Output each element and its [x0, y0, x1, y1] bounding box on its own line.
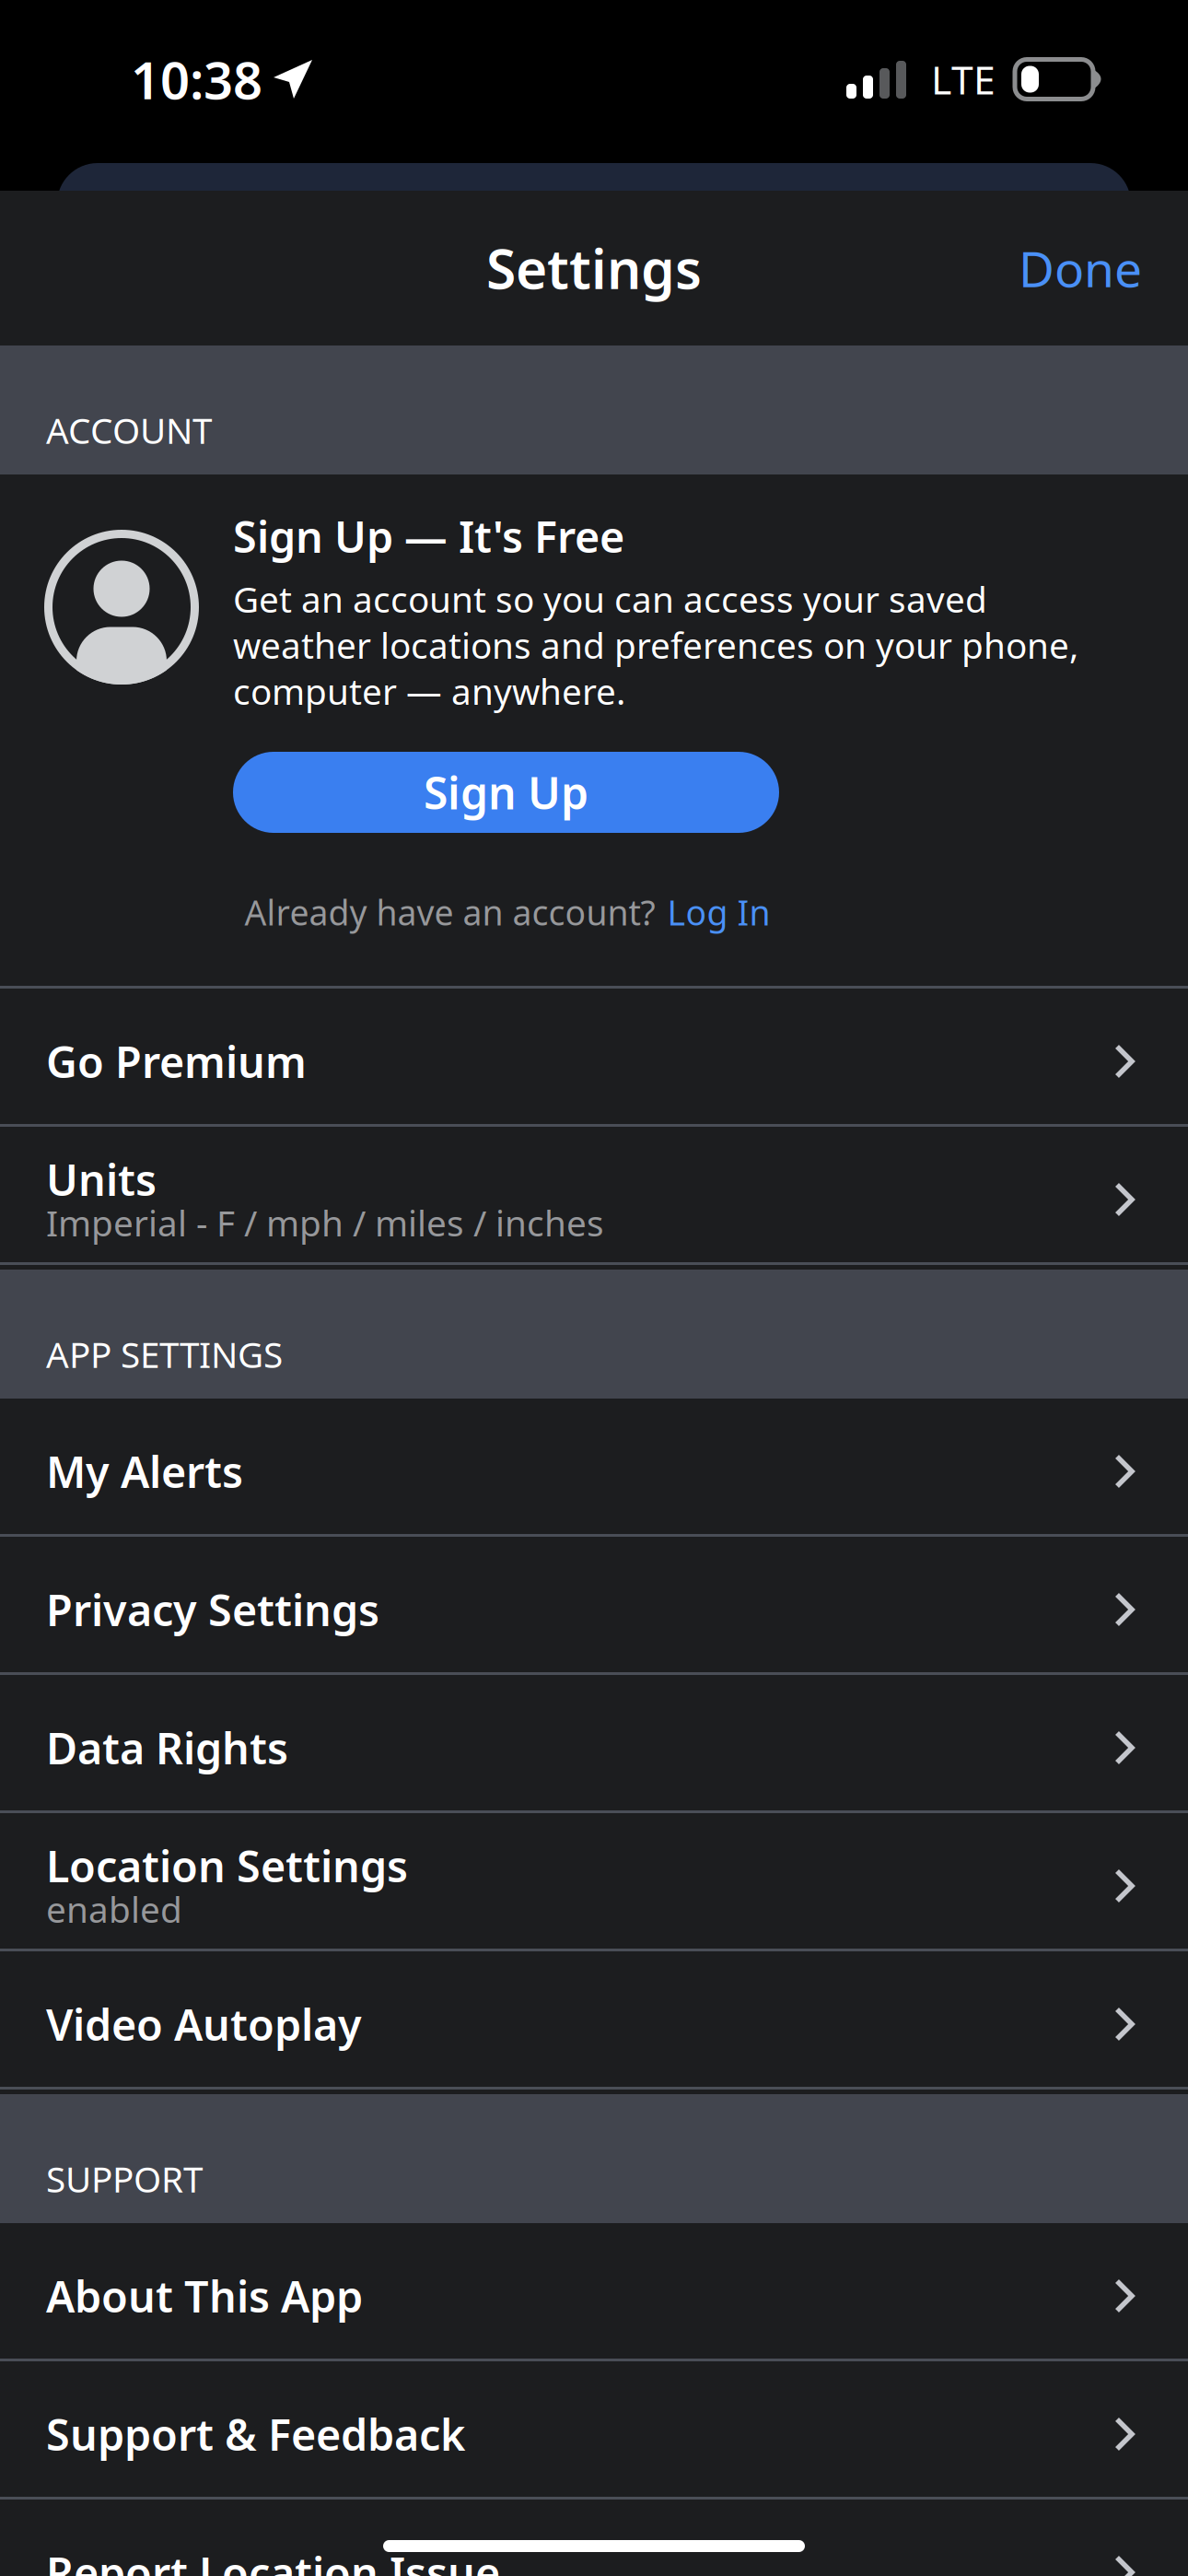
staticText: ACCOUNT — [46, 406, 212, 454]
button[interactable]: Privacy Settings — [0, 1537, 1188, 1672]
staticText: About This App — [46, 2267, 363, 2324]
button[interactable]: Sign Up — [233, 752, 779, 833]
staticText: Settings — [486, 232, 702, 304]
button[interactable]: Already have an account? — [233, 884, 779, 941]
staticText: Video Autoplay — [46, 1996, 362, 2053]
button[interactable]: Done — [982, 213, 1188, 323]
button[interactable]: Report Location Issue — [0, 2500, 1188, 2576]
staticText: Already have an account? — [245, 889, 655, 935]
staticText: Privacy Settings — [46, 1581, 379, 1638]
staticText: 10:38 — [131, 45, 262, 114]
staticText: LTE — [931, 53, 996, 105]
button[interactable]: Location Settings — [0, 1813, 1188, 1949]
staticText: Done — [1019, 235, 1142, 301]
staticText: Sign Up — It's Free — [233, 508, 624, 565]
button[interactable]: About This App — [0, 2223, 1188, 2359]
button[interactable]: Go Premium — [0, 989, 1188, 1124]
staticText: Log In — [667, 889, 770, 935]
staticText: Get an account so you can access your sa… — [233, 575, 987, 622]
staticText: enabled — [46, 1885, 182, 1933]
button[interactable]: Video Autoplay — [0, 1951, 1188, 2087]
staticText: SUPPORT — [46, 2155, 203, 2202]
staticText: Location Settings — [46, 1837, 408, 1894]
staticText: Data Rights — [46, 1719, 288, 1776]
staticText: APP SETTINGS — [46, 1330, 283, 1378]
staticText: Report Location Issue — [46, 2544, 500, 2576]
staticText: Sign Up — [424, 763, 588, 822]
staticText: Units — [46, 1151, 157, 1208]
staticText: My Alerts — [46, 1443, 243, 1500]
staticText: computer — anywhere. — [233, 667, 625, 715]
staticText: Support & Feedback — [46, 2406, 465, 2463]
staticText: Imperial - F / mph / miles / inches — [46, 1199, 604, 1246]
button[interactable]: Data Rights — [0, 1675, 1188, 1810]
staticText: Go Premium — [46, 1033, 307, 1090]
button[interactable]: My Alerts — [0, 1399, 1188, 1534]
button[interactable]: Units — [0, 1127, 1188, 1262]
staticText: weather locations and preferences on you… — [233, 621, 1078, 669]
button[interactable]: Support & Feedback — [0, 2361, 1188, 2497]
